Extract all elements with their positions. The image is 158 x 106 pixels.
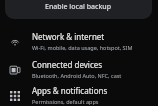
staticText: Bluetooth, Android Auto, NFC, cast	[32, 72, 122, 79]
button[interactable]: Connected devices	[0, 56, 158, 82]
other: Connected devices	[9, 64, 20, 75]
other: Network and internet	[9, 36, 20, 47]
staticText: Apps & notifications	[32, 85, 108, 96]
button[interactable]: Network and internet	[0, 28, 158, 54]
staticText: Permissions, default apps	[32, 98, 99, 105]
staticText: Wi-Fi, mobile, data usage, hotspot, SIM	[32, 44, 133, 51]
staticText: Network & internet	[32, 31, 105, 42]
staticText: Enable local backup	[45, 2, 112, 12]
staticText: Connected devices	[32, 59, 103, 70]
other: Apps and notifications	[9, 90, 20, 101]
button[interactable]: Enable local backup	[38, 1, 119, 13]
button[interactable]: Apps and notifications	[0, 84, 158, 106]
